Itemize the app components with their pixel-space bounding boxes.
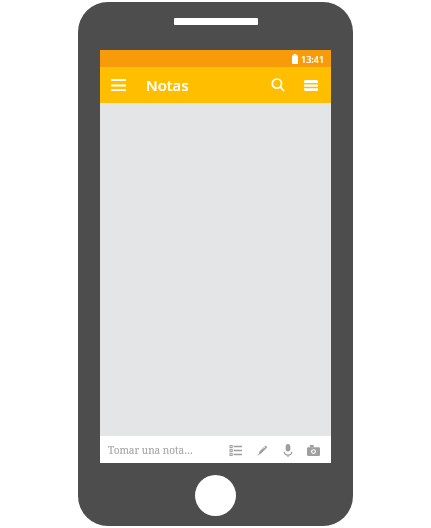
button[interactable]: New drawing [249, 437, 275, 463]
button[interactable]: Notas [146, 75, 189, 95]
button[interactable]: New list [223, 437, 249, 463]
button[interactable]: Change view [297, 68, 325, 102]
button[interactable]: Search [261, 68, 295, 102]
button[interactable]: Open navigation drawer [100, 67, 136, 103]
staticText: 13:41 [301, 53, 325, 65]
button[interactable]: Home [195, 475, 236, 516]
button[interactable]: New voice note [275, 437, 301, 463]
button[interactable]: New photo note [301, 437, 325, 463]
button[interactable]: Tomar una nota… [108, 443, 223, 457]
